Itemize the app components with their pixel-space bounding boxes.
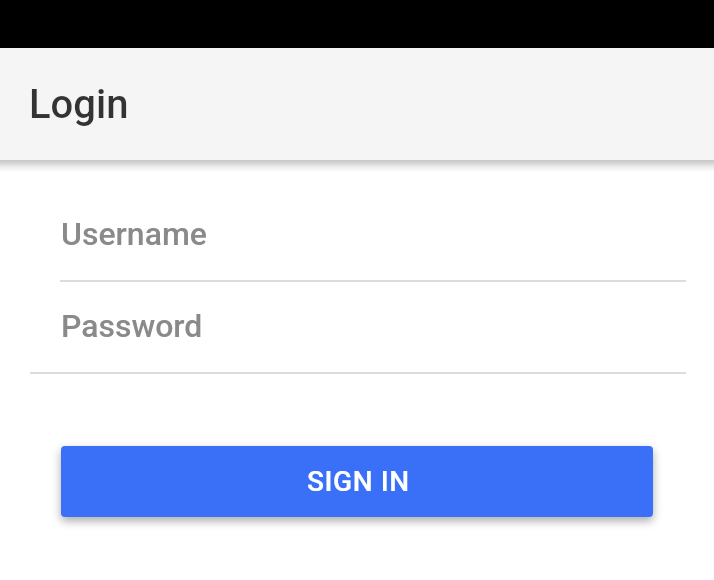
staticText: Username: [61, 215, 207, 253]
button[interactable]: Username input field: [60, 200, 686, 282]
staticText: Password: [61, 307, 203, 345]
staticText: SIGN IN: [307, 465, 410, 498]
button[interactable]: SIGN IN: [61, 446, 653, 517]
staticText: Login: [29, 81, 129, 128]
button[interactable]: Password input field: [30, 292, 686, 374]
